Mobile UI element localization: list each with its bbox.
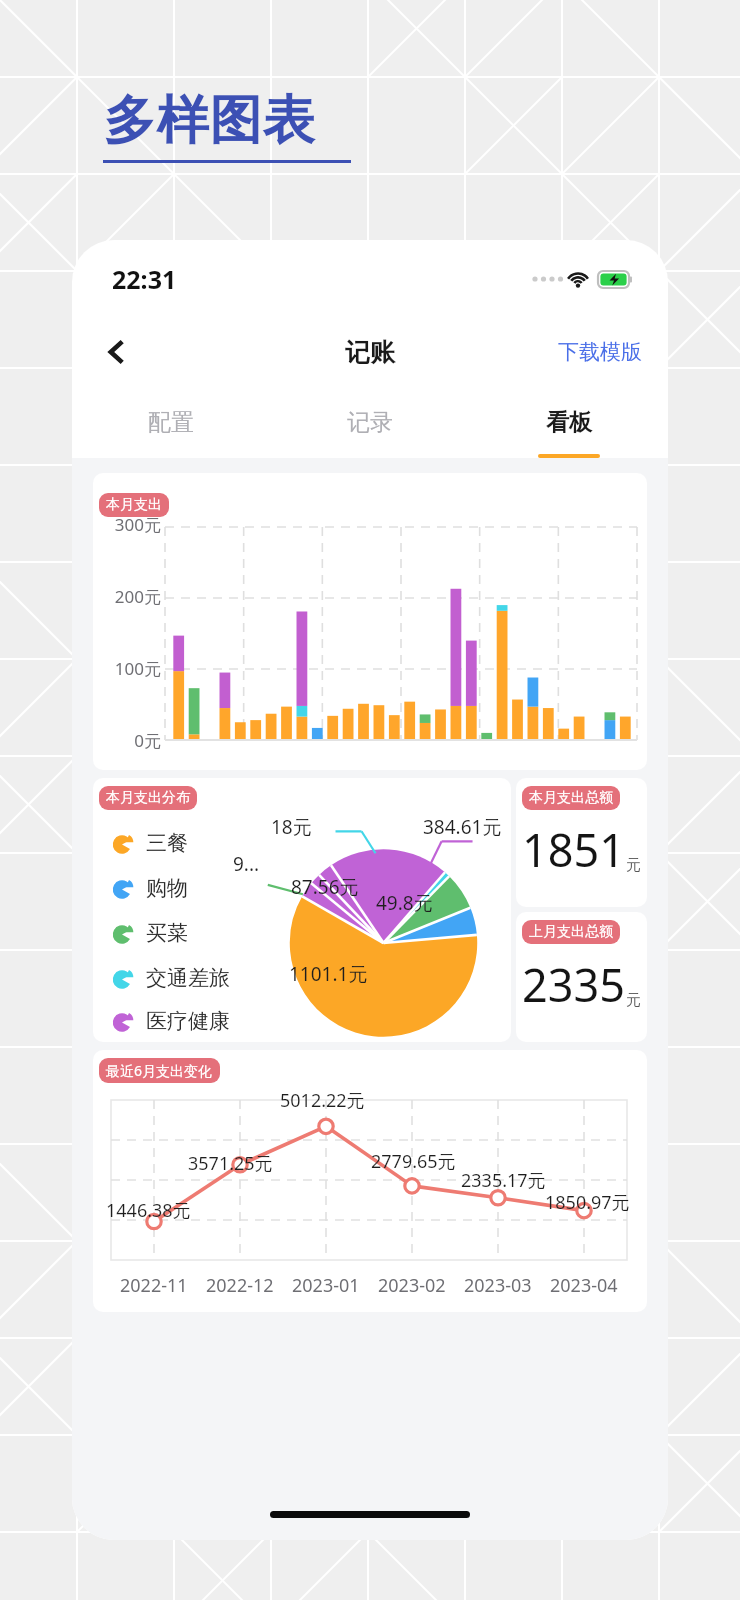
- staticText: 384.61元: [423, 814, 502, 840]
- button[interactable]: 三餐: [111, 820, 188, 865]
- staticText: 本月支出总额: [529, 789, 613, 807]
- staticText: 最近6月支出变化: [106, 1061, 213, 1080]
- staticText: 100元: [103, 657, 161, 680]
- staticText: 下载模版: [558, 339, 642, 365]
- staticText: 22:31: [112, 262, 177, 296]
- staticText: 购物: [146, 875, 188, 901]
- staticText: 1851: [522, 819, 625, 880]
- staticText: 18元: [271, 814, 312, 840]
- staticText: 本月支出: [106, 496, 162, 514]
- staticText: 本月支出分布: [106, 789, 190, 807]
- staticText: 记账: [345, 337, 395, 368]
- button[interactable]: 下载模版: [554, 331, 646, 373]
- staticText: 9...: [233, 851, 260, 877]
- staticText: 2022-12: [206, 1273, 274, 1298]
- button[interactable]: 购物: [111, 865, 188, 910]
- staticText: 49.8元: [376, 890, 433, 916]
- staticText: 2779.65元: [371, 1149, 456, 1174]
- staticText: 0元: [103, 729, 161, 752]
- staticText: 2335.17元: [461, 1168, 546, 1193]
- staticText: 记录: [347, 408, 393, 437]
- button[interactable]: 交通差旅: [111, 955, 230, 1000]
- staticText: 1850.97元: [545, 1190, 630, 1215]
- staticText: 1101.1元: [289, 961, 368, 987]
- staticText: 2023-04: [550, 1273, 618, 1298]
- staticText: 2023-02: [378, 1273, 446, 1298]
- button[interactable]: Back: [90, 325, 144, 379]
- staticText: 300元: [103, 513, 161, 536]
- staticText: 配置: [148, 408, 194, 437]
- button[interactable]: 医疗健康: [111, 1000, 230, 1042]
- staticText: 200元: [103, 585, 161, 608]
- staticText: 元: [626, 991, 641, 1010]
- staticText: 元: [626, 856, 641, 875]
- staticText: 看板: [546, 408, 592, 437]
- staticText: 2335: [522, 954, 625, 1015]
- button[interactable]: 记录: [270, 386, 469, 458]
- staticText: 三餐: [146, 830, 188, 856]
- staticText: 医疗健康: [146, 1008, 230, 1034]
- staticText: 5012.22元: [280, 1088, 365, 1113]
- staticText: 2023-01: [292, 1273, 360, 1298]
- button[interactable]: 配置: [72, 386, 270, 458]
- staticText: 交通差旅: [146, 965, 230, 991]
- staticText: 上月支出总额: [529, 923, 613, 941]
- staticText: 1446.38元: [106, 1198, 191, 1223]
- button[interactable]: 看板: [469, 386, 668, 458]
- staticText: 多样图表: [103, 88, 315, 154]
- staticText: 3571.25元: [188, 1151, 273, 1176]
- staticText: 2022-11: [120, 1273, 188, 1298]
- staticText: 买菜: [146, 920, 188, 946]
- button[interactable]: 买菜: [111, 910, 188, 955]
- staticText: 87.56元: [291, 874, 359, 900]
- staticText: 2023-03: [464, 1273, 532, 1298]
